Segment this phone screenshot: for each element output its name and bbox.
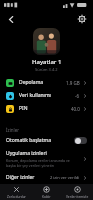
button[interactable]: Toggle Otomatik başlatma xyxy=(74,137,87,144)
staticText: Diğer izinler xyxy=(6,174,50,181)
button[interactable]: Uygulama izinleri xyxy=(0,147,93,171)
staticText: Depolama xyxy=(19,79,66,86)
staticText: Veri kullanımı xyxy=(19,92,75,99)
staticText: Otomatik başlatma xyxy=(6,137,74,144)
staticText: PIN xyxy=(19,105,71,112)
button[interactable]: Kaldır xyxy=(32,184,61,200)
staticText: Hayatlar 1 xyxy=(32,58,62,66)
button[interactable]: Zorla durdur xyxy=(2,184,31,200)
staticText: Kaldır xyxy=(42,195,51,199)
staticText: 40.0 xyxy=(71,106,80,112)
button[interactable]: Otomatik başlatma xyxy=(0,134,93,147)
staticText: 2 izin ver verildi xyxy=(50,175,80,180)
button[interactable]: Veri kullanımı xyxy=(0,89,93,102)
button[interactable]: Back xyxy=(3,11,19,27)
staticText: Uygulama izinleri xyxy=(6,150,47,157)
staticText: İzinler xyxy=(6,127,20,133)
button[interactable]: Verileri temizle xyxy=(63,184,92,200)
button[interactable]: PIN xyxy=(0,102,93,115)
staticText: -6 xyxy=(75,93,80,99)
staticText: Sürüm 3.4.2 xyxy=(35,67,58,72)
button[interactable]: Settings xyxy=(74,11,90,27)
button[interactable]: App icon xyxy=(33,28,60,55)
staticText: 1.9 GB xyxy=(66,80,80,86)
button[interactable]: Diğer izinler xyxy=(0,171,93,184)
button[interactable]: Depolama xyxy=(0,76,93,89)
staticText: Zorla durdur xyxy=(7,195,26,199)
staticText: Konum, depolama verileri arasında ve baş… xyxy=(6,158,80,168)
staticText: Verileri temizle xyxy=(66,195,89,199)
